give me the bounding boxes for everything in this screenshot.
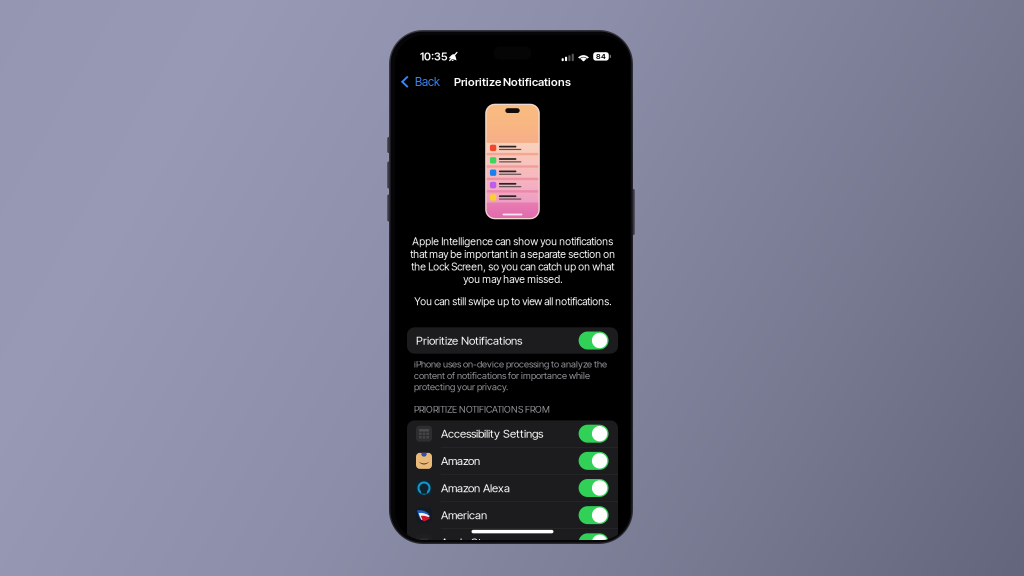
button[interactable]: Amazon <box>407 447 618 475</box>
button[interactable]: American <box>407 502 618 529</box>
staticText: Prioritize Notifications <box>454 75 571 89</box>
staticText: Amazon <box>441 454 480 468</box>
staticText: American <box>441 508 487 522</box>
button[interactable]: Prioritize Notifications <box>407 327 618 354</box>
staticText: You can still swipe up to view all notif… <box>414 295 611 308</box>
staticText: Accessibility Settings <box>441 427 543 441</box>
button[interactable]: Apple Store <box>407 529 618 556</box>
staticText: 10:35 <box>420 50 447 63</box>
staticText: PRIORITIZE NOTIFICATIONS FROM <box>414 404 550 415</box>
staticText: Apple Intelligence can show you notifica… <box>410 235 615 285</box>
staticText: Prioritize Notifications <box>416 334 522 347</box>
staticText: iPhone uses on-device processing to anal… <box>414 359 607 392</box>
staticText: Back <box>415 75 440 89</box>
staticText: Apple Store <box>441 535 498 549</box>
button[interactable]: Amazon Alexa <box>407 475 618 502</box>
staticText: 84 <box>596 52 606 61</box>
button[interactable]: Back <box>395 71 449 93</box>
staticText: Amazon Alexa <box>441 481 510 495</box>
button[interactable]: Accessibility Settings <box>407 420 618 448</box>
